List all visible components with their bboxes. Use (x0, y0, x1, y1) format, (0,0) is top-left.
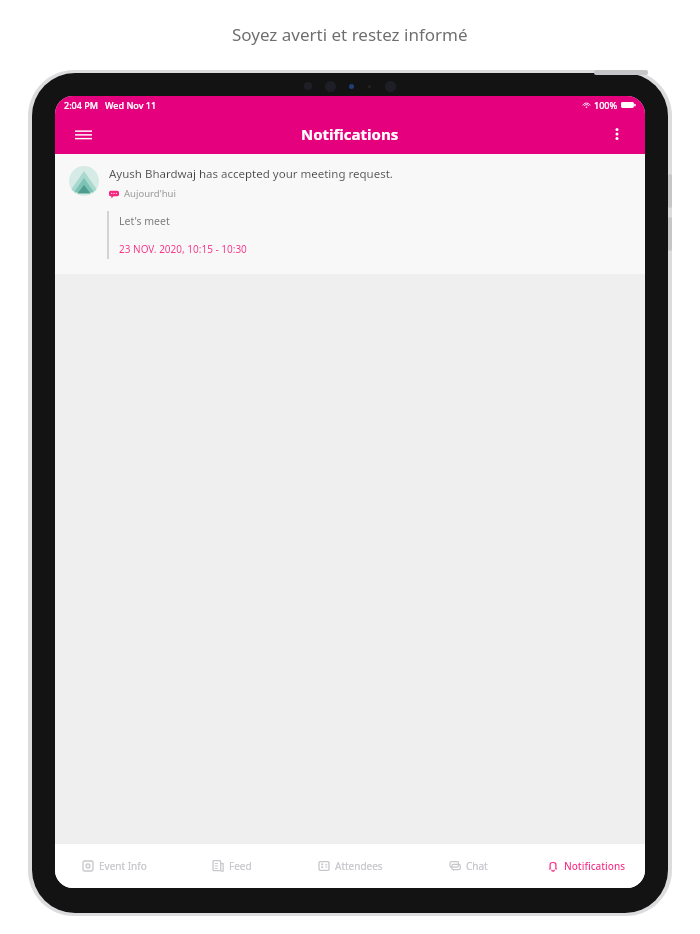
staticText: Ayush Bhardwaj has accepted your meeting… (109, 166, 393, 182)
button[interactable]: Notifications (527, 844, 645, 888)
button[interactable]: Ayush Bhardwaj has accepted your meeting… (55, 154, 645, 274)
staticText: Wed Nov 11 (105, 99, 157, 111)
staticText: Notifications (564, 859, 626, 873)
staticText: Event Info (99, 859, 147, 873)
staticText: 23 NOV. 2020, 10:15 - 10:30 (119, 242, 247, 256)
button[interactable]: More options (599, 116, 635, 152)
staticText: Soyez averti et restez informé (232, 23, 468, 46)
staticText: 100% (594, 99, 618, 111)
button[interactable]: Event Info (55, 844, 173, 888)
staticText: Aujourd'hui (124, 187, 176, 200)
staticText: Attendees (335, 859, 383, 873)
button[interactable]: Attendees (291, 844, 409, 888)
staticText: 2:04 PM (64, 99, 98, 111)
button[interactable]: Feed (173, 844, 291, 888)
button[interactable]: Open navigation menu (65, 116, 101, 152)
staticText: Notifications (301, 124, 399, 144)
button[interactable]: Chat (409, 844, 527, 888)
staticText: Feed (229, 859, 252, 873)
staticText: Chat (466, 859, 488, 873)
staticText: Let's meet (119, 214, 170, 228)
